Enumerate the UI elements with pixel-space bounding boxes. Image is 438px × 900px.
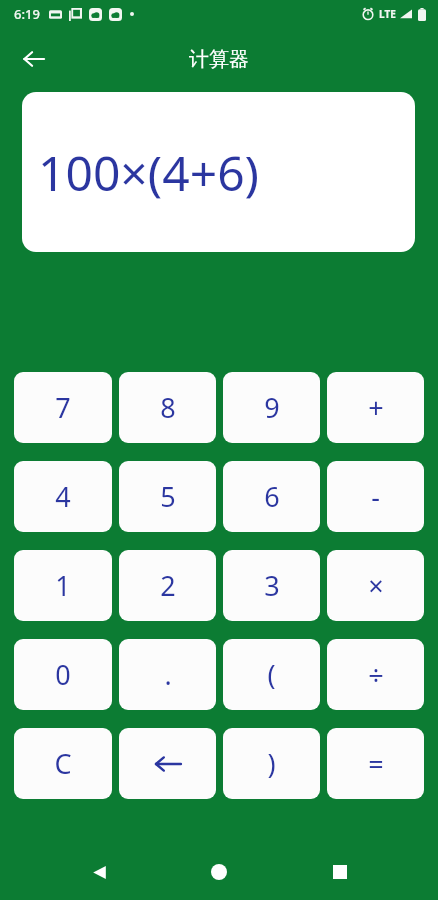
staticText: 100×(4+6) — [38, 140, 259, 205]
button[interactable]: 9 — [223, 372, 320, 443]
button[interactable]: Back — [10, 35, 58, 83]
staticText: 8 — [160, 389, 176, 426]
button[interactable]: = — [327, 728, 424, 799]
staticText: LTE — [379, 7, 396, 21]
button[interactable]: 4 — [14, 461, 112, 532]
button[interactable]: - — [327, 461, 424, 532]
button[interactable]: 5 — [119, 461, 216, 532]
staticText: 7 — [55, 389, 71, 426]
button[interactable]: 7 — [14, 372, 112, 443]
staticText: + — [368, 389, 384, 426]
staticText: × — [368, 567, 384, 604]
button[interactable]: . — [119, 639, 216, 710]
button[interactable]: 3 — [223, 550, 320, 621]
button[interactable]: ( — [223, 639, 320, 710]
staticText: 9 — [264, 389, 280, 426]
staticText: ( — [267, 656, 276, 693]
button[interactable]: + — [327, 372, 424, 443]
staticText: 0 — [55, 656, 71, 693]
staticText: . — [164, 656, 172, 693]
button[interactable]: ) — [223, 728, 320, 799]
button[interactable]: Backspace — [119, 728, 216, 799]
staticText: = — [368, 745, 384, 782]
button[interactable]: Recent apps — [318, 850, 362, 894]
button[interactable]: ÷ — [327, 639, 424, 710]
staticText: 计算器 — [189, 47, 249, 72]
staticText: ÷ — [368, 656, 384, 693]
button[interactable]: C — [14, 728, 112, 799]
button[interactable]: 8 — [119, 372, 216, 443]
button[interactable]: 2 — [119, 550, 216, 621]
button[interactable]: 6 — [223, 461, 320, 532]
staticText: 6:19 — [14, 5, 40, 23]
staticText: 4 — [55, 478, 71, 515]
other: Backspace — [151, 747, 185, 781]
button[interactable]: Back — [77, 850, 121, 894]
staticText: - — [371, 478, 380, 515]
button[interactable]: Home — [197, 850, 241, 894]
staticText: 1 — [55, 567, 71, 604]
button[interactable]: 1 — [14, 550, 112, 621]
staticText: 3 — [264, 567, 280, 604]
staticText: 5 — [160, 478, 176, 515]
button[interactable]: 0 — [14, 639, 112, 710]
staticText: 2 — [160, 567, 176, 604]
staticText: ) — [267, 745, 276, 782]
staticText: 6 — [264, 478, 280, 515]
button[interactable]: × — [327, 550, 424, 621]
button[interactable]: 100×(4+6) — [22, 92, 415, 252]
staticText: C — [54, 745, 72, 782]
